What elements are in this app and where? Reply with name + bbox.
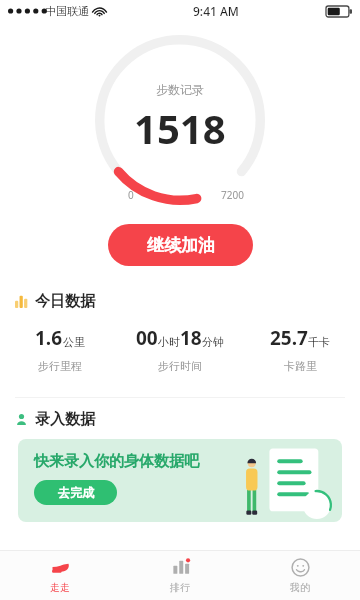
staticText: 千卡 (308, 335, 330, 349)
staticText: 快来录入你的身体数据吧 (34, 452, 199, 471)
staticText: 继续加油 (147, 235, 215, 256)
staticText: 9:41 AM (193, 3, 239, 19)
staticText: 分钟 (202, 335, 224, 349)
staticText: 7200 (221, 188, 244, 202)
button[interactable]: 走走 (0, 551, 120, 600)
staticText: 25.7 (270, 325, 308, 351)
staticText: 步行时间 (158, 359, 202, 373)
staticText: 1.6 (35, 325, 63, 351)
staticText: 去完成 (58, 485, 94, 500)
staticText: 我的 (290, 581, 310, 594)
staticText: 00 (136, 325, 158, 351)
staticText: 步数记录 (156, 82, 204, 97)
staticText: 卡路里 (284, 359, 317, 373)
staticText: 步行里程 (38, 359, 82, 373)
staticText: 录入数据 (35, 410, 95, 429)
staticText: 小时 (158, 335, 180, 349)
staticText: 排行 (170, 581, 190, 594)
staticText: 18 (180, 325, 202, 351)
staticText: 中国联通 (45, 4, 89, 18)
staticText: 公里 (63, 335, 85, 349)
staticText: 走走 (50, 581, 70, 594)
button[interactable]: 快来录入你的身体数据吧 (18, 439, 342, 522)
staticText: 1518 (134, 101, 226, 155)
staticText: 0 (128, 188, 134, 202)
button[interactable]: 继续加油 (108, 224, 253, 266)
button[interactable]: 排行 (120, 551, 240, 600)
button[interactable]: 去完成 (34, 480, 117, 505)
staticText: 今日数据 (35, 292, 95, 311)
button[interactable]: 我的 (240, 551, 360, 600)
